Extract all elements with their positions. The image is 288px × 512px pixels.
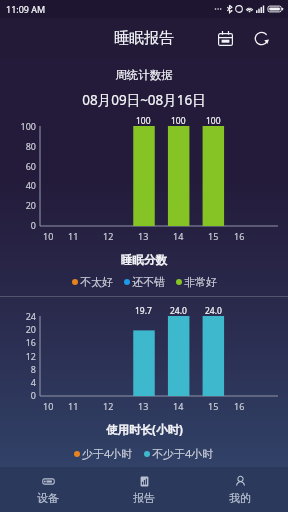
staticText: 15: [208, 400, 219, 412]
staticText: 我的: [229, 491, 251, 505]
staticText: 不太好: [80, 275, 113, 289]
staticText: 24.0: [170, 305, 187, 317]
staticText: 睡眠报告: [114, 29, 174, 48]
staticText: 8: [30, 363, 36, 375]
staticText: 12: [103, 400, 114, 412]
staticText: 60: [25, 160, 36, 172]
staticText: 24.0: [205, 305, 222, 317]
staticText: 16: [234, 400, 245, 412]
staticText: 使用时长(小时): [106, 422, 183, 438]
staticText: 20: [25, 199, 36, 211]
button[interactable]: 还不错: [124, 275, 165, 289]
button[interactable]: 非常好: [176, 275, 217, 289]
staticText: 设备: [37, 491, 59, 505]
staticText: 80: [25, 140, 36, 152]
staticText: 12: [103, 230, 114, 242]
staticText: 24: [25, 310, 36, 322]
staticText: 11:09 AM: [6, 3, 46, 15]
staticText: 08月09日~08月16日: [82, 91, 206, 109]
staticText: 100: [136, 115, 151, 127]
button[interactable]: 不少于4小时: [144, 446, 214, 461]
staticText: 16: [234, 230, 245, 242]
staticText: 40: [25, 179, 36, 191]
staticText: 100: [171, 115, 186, 127]
staticText: 100: [206, 115, 221, 127]
button[interactable]: 少于4小时: [74, 446, 133, 461]
button[interactable]: 设备: [0, 467, 96, 512]
button[interactable]: 报告: [96, 467, 192, 512]
staticText: 周统计数据: [115, 68, 173, 82]
staticText: 11: [68, 230, 79, 242]
staticText: 19.7: [135, 305, 152, 317]
button[interactable]: Sync: [246, 23, 276, 53]
button[interactable]: Calendar: [210, 23, 240, 53]
staticText: 12: [25, 350, 36, 362]
staticText: 4: [30, 376, 36, 388]
staticText: 10: [43, 400, 54, 412]
staticText: 报告: [133, 491, 155, 505]
button[interactable]: 不太好: [72, 275, 113, 289]
staticText: 不少于4小时: [152, 446, 214, 461]
staticText: 15: [208, 230, 219, 242]
staticText: 非常好: [184, 275, 217, 289]
staticText: 11: [68, 400, 79, 412]
button[interactable]: 我的: [192, 467, 288, 512]
staticText: 13: [138, 230, 149, 242]
staticText: 16: [25, 336, 36, 348]
staticText: 14: [173, 400, 184, 412]
staticText: 0: [30, 219, 36, 231]
staticText: 睡眠分数: [121, 253, 167, 267]
staticText: 13: [138, 400, 149, 412]
staticText: 20: [25, 323, 36, 335]
staticText: 10: [43, 230, 54, 242]
staticText: 0: [30, 389, 36, 401]
staticText: 还不错: [132, 275, 165, 289]
staticText: 100: [20, 120, 36, 132]
staticText: 少于4小时: [82, 446, 133, 461]
staticText: 14: [173, 230, 184, 242]
